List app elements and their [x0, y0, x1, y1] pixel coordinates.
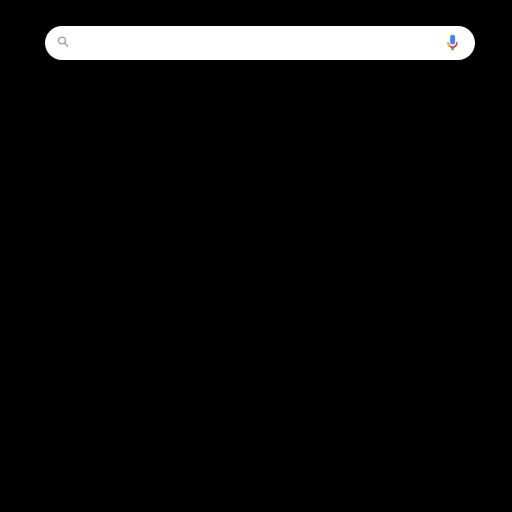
button[interactable]: Search: [45, 26, 475, 60]
button[interactable]: Search: [45, 26, 85, 60]
button[interactable]: Search by voice: [433, 26, 475, 60]
